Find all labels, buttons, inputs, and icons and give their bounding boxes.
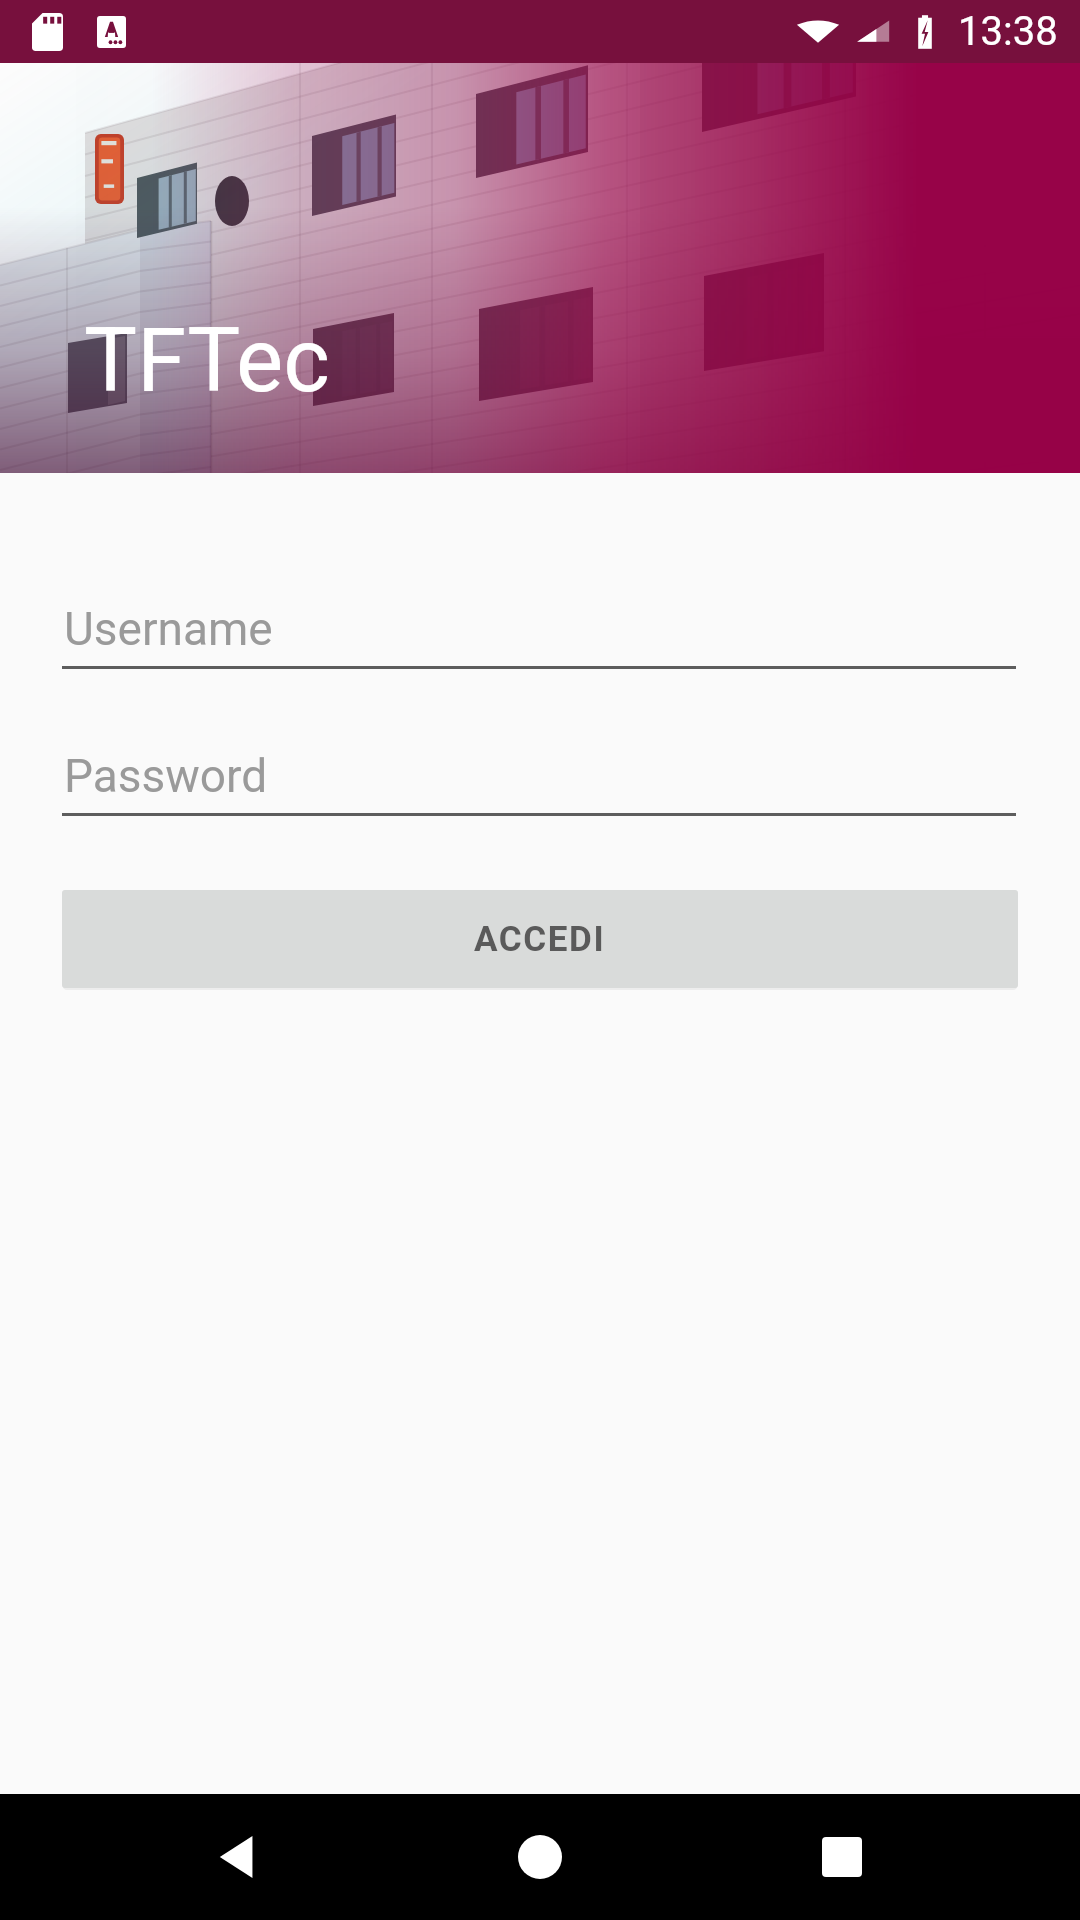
- staticText: Username: [64, 602, 273, 656]
- button[interactable]: Home: [477, 1794, 603, 1920]
- button[interactable]: Username: [62, 591, 1018, 670]
- staticText: TFTec: [84, 308, 330, 412]
- staticText: 13:38: [958, 8, 1058, 55]
- button[interactable]: Back: [176, 1794, 302, 1920]
- button[interactable]: ACCEDI: [62, 890, 1018, 988]
- staticText: ACCEDI: [474, 919, 606, 960]
- button[interactable]: Password: [62, 738, 1018, 817]
- staticText: Password: [64, 749, 268, 803]
- button[interactable]: Recents: [779, 1794, 905, 1920]
